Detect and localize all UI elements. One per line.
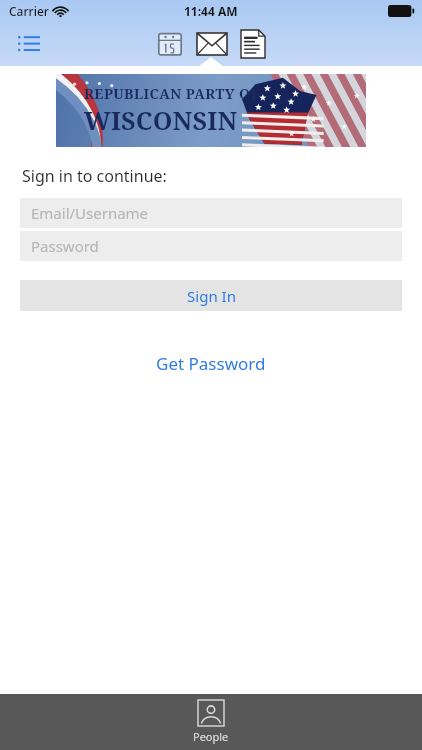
button[interactable]: REPUBLICAN PARTY OF bbox=[56, 74, 366, 147]
button[interactable]: List bbox=[12, 30, 46, 59]
button[interactable]: Get Password bbox=[142, 347, 280, 380]
staticText: Get Password bbox=[156, 352, 266, 375]
button[interactable]: Mail bbox=[190, 29, 234, 59]
button[interactable]: People bbox=[175, 696, 247, 748]
staticText: WISCONSIN bbox=[84, 103, 238, 137]
staticText: Sign In bbox=[187, 286, 236, 306]
staticText: REPUBLICAN PARTY OF bbox=[84, 84, 260, 103]
staticText: Carrier bbox=[9, 3, 49, 19]
staticText: Email/Username bbox=[31, 203, 149, 223]
button[interactable]: Sign In bbox=[20, 280, 402, 311]
button[interactable]: Documents bbox=[234, 26, 272, 62]
button[interactable]: Email/Username bbox=[20, 198, 402, 228]
button[interactable]: Password bbox=[20, 231, 402, 261]
staticText: Password bbox=[31, 236, 99, 256]
button[interactable]: Calendar bbox=[150, 27, 190, 61]
staticText: 11:44 AM bbox=[184, 3, 238, 19]
staticText: People bbox=[193, 729, 229, 744]
staticText: Sign in to continue: bbox=[22, 165, 167, 187]
